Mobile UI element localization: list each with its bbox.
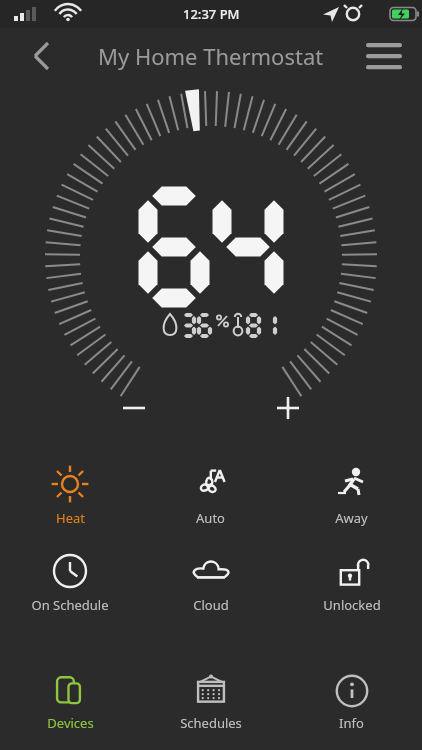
button[interactable]: Info: [281, 672, 422, 732]
staticText: Cloud: [193, 596, 229, 614]
staticText: Devices: [47, 714, 94, 732]
button[interactable]: Heat: [0, 464, 140, 527]
button[interactable]: Cloud: [140, 551, 281, 614]
button[interactable]: Increase temperature: [264, 384, 312, 432]
staticText: Info: [339, 714, 364, 732]
staticText: 12:37 PM: [183, 5, 240, 23]
button[interactable]: Back: [18, 33, 64, 79]
staticText: Away: [335, 509, 368, 527]
staticText: Schedules: [180, 714, 242, 732]
staticText: Unlocked: [323, 596, 381, 614]
button[interactable]: Away: [281, 464, 422, 527]
button[interactable]: Unlocked: [281, 551, 422, 614]
staticText: Heat: [56, 509, 85, 527]
staticText: Auto: [196, 509, 225, 527]
button[interactable]: Menu: [360, 32, 408, 80]
button[interactable]: Decrease temperature: [110, 384, 158, 432]
button[interactable]: Auto: [140, 464, 281, 527]
button[interactable]: On Schedule: [0, 551, 140, 614]
staticText: On Schedule: [31, 596, 109, 614]
button[interactable]: Devices: [0, 672, 140, 732]
staticText: My Home Thermostat: [98, 41, 324, 71]
button[interactable]: Schedules: [140, 672, 281, 732]
